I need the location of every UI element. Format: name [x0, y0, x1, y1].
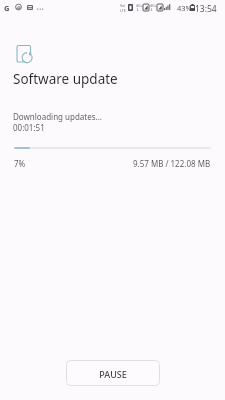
staticText: LTE: [120, 8, 126, 13]
staticText: Software update: [13, 70, 118, 88]
staticText: Downloading updates...: [13, 111, 103, 122]
staticText: 4G+: [150, 3, 157, 8]
staticText: ↕: [136, 8, 140, 12]
staticText: 9.57 MB / 122.08 MB: [133, 158, 211, 169]
button[interactable]: PAUSE: [66, 360, 160, 386]
staticText: 43%: [177, 3, 192, 13]
staticText: 13:54: [195, 3, 217, 15]
staticText: 4G+: [136, 3, 143, 8]
staticText: G: [4, 3, 10, 13]
staticText: 7%: [14, 158, 26, 169]
staticText: Vol: [120, 3, 126, 8]
staticText: 00:01:51: [13, 122, 45, 133]
staticText: ↕: [150, 8, 154, 12]
staticText: PAUSE: [99, 368, 127, 380]
